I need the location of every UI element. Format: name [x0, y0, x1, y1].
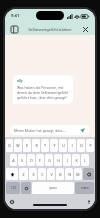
button[interactable]: W [14, 139, 22, 152]
button[interactable]: S [18, 154, 26, 166]
staticText: Meine Mutter hat gesagt, dass ... [14, 128, 67, 133]
staticText: T [44, 143, 46, 148]
button[interactable]: Z [19, 168, 28, 180]
staticText: G [48, 158, 51, 163]
button[interactable]: R [32, 139, 40, 152]
button[interactable]: Dictate [86, 199, 91, 204]
staticText: U [62, 143, 65, 148]
button[interactable]: Meine Mutter hat gesagt, dass ... [10, 125, 90, 135]
staticText: Y [53, 143, 56, 148]
button[interactable]: Change keyboard [9, 199, 14, 204]
button[interactable]: L [81, 154, 89, 166]
button[interactable]: Send [79, 127, 86, 134]
staticText: return [81, 186, 89, 190]
button[interactable]: return [75, 182, 94, 194]
staticText: M [76, 172, 80, 177]
staticText: I [71, 143, 73, 148]
staticText: W [16, 143, 20, 148]
button[interactable]: X [29, 168, 37, 180]
staticText: L [84, 158, 86, 163]
button[interactable]: G [45, 154, 53, 166]
staticText: O [80, 143, 83, 148]
button[interactable]: space [32, 182, 74, 194]
staticText: K [75, 158, 78, 163]
staticText: P [89, 143, 92, 148]
staticText: A [12, 158, 15, 163]
staticText: S [21, 158, 23, 163]
staticText: Z [22, 172, 25, 177]
button[interactable]: Close [81, 25, 90, 34]
button[interactable]: O [77, 139, 85, 152]
staticText: E [26, 143, 28, 148]
button[interactable]: E [23, 139, 31, 152]
button[interactable]: Q [6, 139, 13, 152]
staticText: 9:41 [11, 13, 20, 19]
button[interactable]: N [65, 168, 73, 180]
staticText: space [49, 186, 57, 190]
button[interactable]: P [86, 139, 94, 152]
button[interactable]: I [68, 139, 76, 152]
button[interactable]: D [27, 154, 35, 166]
button[interactable]: J [63, 154, 71, 166]
staticText: B [59, 172, 62, 177]
staticText: ally [17, 79, 23, 83]
button[interactable]: 123 [6, 182, 20, 194]
button[interactable]: T [41, 139, 49, 152]
button[interactable]: B [56, 168, 64, 180]
button[interactable]: A [10, 154, 17, 166]
button[interactable]: F [36, 154, 44, 166]
staticText: 123 [11, 186, 16, 190]
staticText: Was haben die Personen, mit denen du dei… [17, 85, 68, 100]
staticText: R [35, 143, 38, 148]
button[interactable]: V [47, 168, 55, 180]
staticText: Selbstwertgefühl stärken [28, 27, 72, 32]
staticText: D [30, 158, 33, 163]
staticText: V [50, 172, 53, 177]
button[interactable]: M [74, 168, 82, 180]
staticText: C [41, 172, 44, 177]
button[interactable]: ally [13, 75, 73, 104]
button[interactable]: Emoji [21, 182, 31, 194]
button[interactable]: Y [50, 139, 58, 152]
button[interactable]: Backspace [83, 168, 94, 180]
button[interactable]: Menu [10, 25, 19, 34]
staticText: X [32, 172, 35, 177]
button[interactable]: H [54, 154, 62, 166]
staticText: N [68, 172, 71, 177]
button[interactable]: Shift [6, 168, 18, 180]
staticText: H [57, 158, 60, 163]
button[interactable]: K [72, 154, 80, 166]
staticText: Q [8, 143, 11, 148]
staticText: J [67, 158, 68, 163]
button[interactable]: U [59, 139, 67, 152]
staticText: F [39, 158, 41, 163]
button[interactable]: C [38, 168, 46, 180]
